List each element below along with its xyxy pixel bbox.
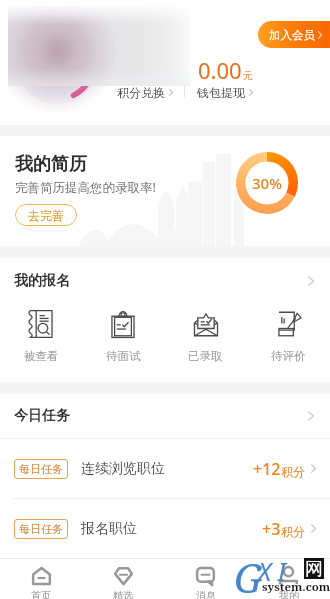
button[interactable]: 每日任务 [0, 499, 330, 558]
staticText: 每日任务 [19, 522, 63, 536]
staticText: 完善简历提高您的录取率! [15, 179, 156, 196]
button[interactable]: 精选 [82, 559, 164, 599]
staticText: 精选 [113, 589, 133, 599]
staticText: 待评价 [271, 349, 306, 363]
button[interactable]: 首页 [0, 559, 82, 599]
button[interactable]: 每日任务 [0, 439, 330, 498]
staticText: 积分兑换 [117, 85, 165, 100]
staticText: 去完善 [28, 208, 64, 223]
staticText: 被查看 [24, 349, 59, 363]
staticText: 我的 [279, 589, 299, 599]
staticText: G [234, 550, 263, 594]
staticText: 元 [243, 69, 253, 82]
staticText: 0.00 [198, 55, 242, 85]
staticText: 30% [252, 173, 282, 193]
button[interactable]: 消息 [164, 559, 247, 599]
staticText: X I [258, 554, 286, 588]
staticText: 钱包提现 [197, 85, 245, 100]
staticText: 已录取 [188, 349, 223, 363]
button[interactable]: 去完善 [15, 204, 77, 226]
staticText: 首页 [31, 589, 51, 599]
button[interactable]: 待面试 [82, 303, 164, 363]
staticText: 网 [305, 558, 323, 579]
staticText: 积分 [281, 464, 305, 479]
staticText: 报名职位 [81, 520, 137, 538]
staticText: +12 [253, 458, 281, 480]
button[interactable]: 今日任务 [0, 394, 330, 438]
staticText: 积分 [281, 524, 305, 539]
staticText: 每日任务 [19, 462, 63, 476]
staticText: +3 [262, 518, 281, 540]
staticText: 我的简历 [15, 153, 87, 176]
staticText: 连续浏览职位 [81, 460, 165, 478]
button[interactable]: 钱包提现 [197, 85, 253, 100]
staticText: 我的报名 [14, 272, 70, 290]
button[interactable]: 积分兑换 [117, 85, 173, 100]
staticText: 待面试 [106, 349, 141, 363]
button[interactable]: 加入会员 [258, 21, 330, 48]
staticText: 消息 [196, 589, 216, 599]
button[interactable]: 我的报名 [0, 258, 330, 303]
button[interactable]: 被查看 [0, 303, 82, 363]
staticText: 加入会员 [269, 28, 315, 42]
button[interactable]: 待评价 [247, 303, 330, 363]
staticText: 今日任务 [14, 407, 70, 425]
button[interactable]: 我的 [247, 559, 330, 599]
button[interactable]: 已录取 [164, 303, 247, 363]
staticText: system.com [262, 579, 330, 595]
